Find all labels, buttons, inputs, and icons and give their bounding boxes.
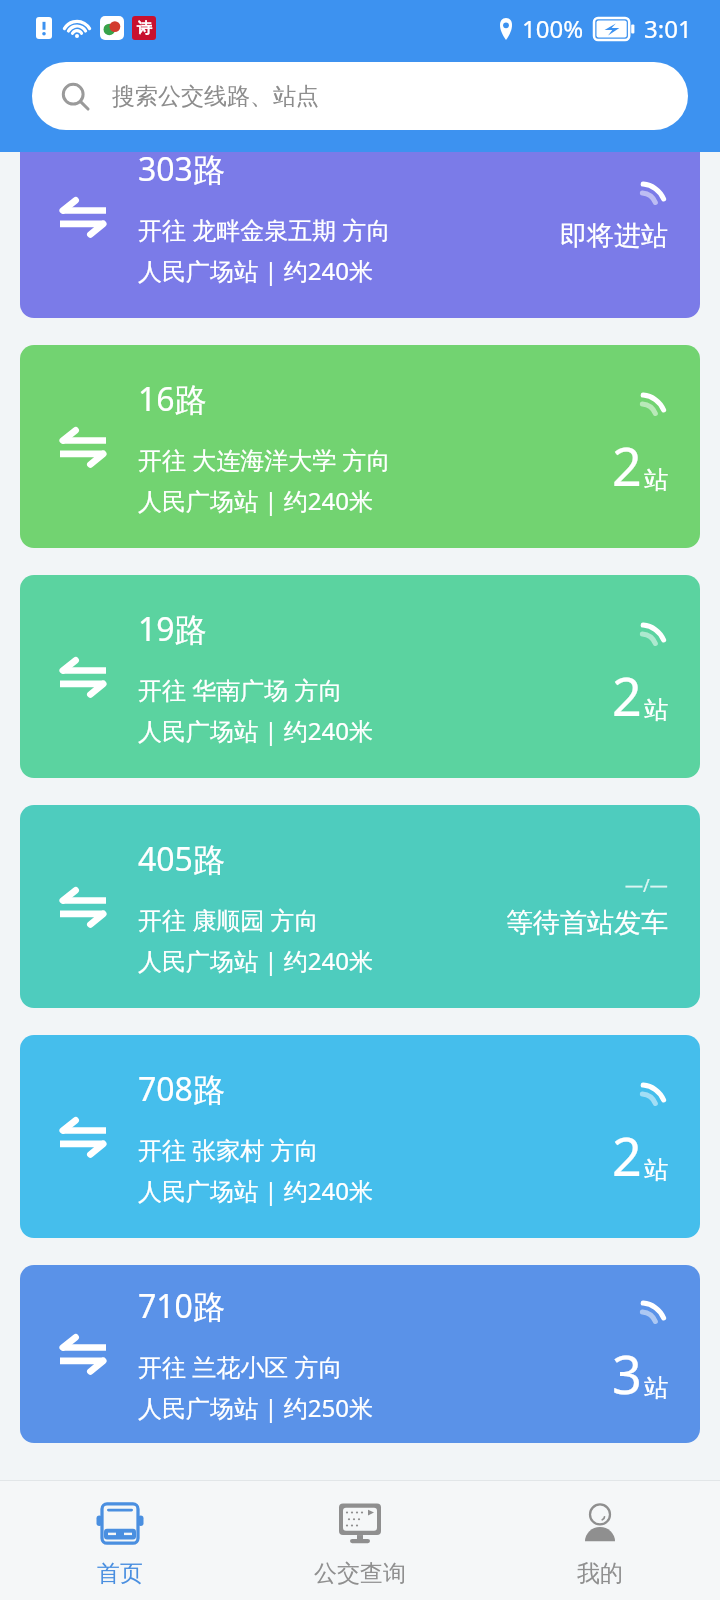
button[interactable]: 710路 <box>20 1265 700 1443</box>
staticText: 开往 张家村 方向 <box>138 1133 319 1166</box>
button[interactable]: 16路 <box>20 345 700 548</box>
staticText: 人民广场站 | 约240米 <box>138 1174 373 1207</box>
staticText: 开往 大连海洋大学 方向 <box>138 443 391 476</box>
button[interactable]: 405路 <box>20 805 700 1008</box>
staticText: 开往 兰花小区 方向 <box>138 1350 343 1383</box>
staticText: 19路 <box>138 607 207 651</box>
staticText: 等待首站发车 <box>506 906 668 940</box>
staticText: 站 <box>644 1155 668 1185</box>
staticText: 站 <box>644 1373 668 1403</box>
other: 首页 <box>95 1501 145 1549</box>
staticText: 开往 龙畔金泉五期 方向 <box>138 213 391 246</box>
staticText: 开往 康顺园 方向 <box>138 903 319 936</box>
staticText: 首页 <box>97 1559 143 1588</box>
staticText: 站 <box>644 465 668 495</box>
staticText: 2 <box>612 1120 642 1191</box>
button[interactable]: 搜索公交线路、站点 <box>32 62 688 130</box>
button[interactable]: 我的 <box>480 1481 720 1600</box>
staticText: 3:01 <box>644 12 692 45</box>
staticText: 人民广场站 | 约250米 <box>138 1391 373 1424</box>
staticText: 诗 <box>137 19 152 38</box>
staticText: 16路 <box>138 377 207 421</box>
other: 公交查询 <box>335 1501 385 1549</box>
staticText: 2 <box>612 430 642 501</box>
staticText: 303路 <box>138 152 225 191</box>
button[interactable]: 首页 <box>0 1481 240 1600</box>
staticText: 人民广场站 | 约240米 <box>138 484 373 517</box>
staticText: 2 <box>612 660 642 731</box>
staticText: 人民广场站 | 约240米 <box>138 254 373 287</box>
other: 我的 <box>575 1501 625 1549</box>
button[interactable]: 19路 <box>20 575 700 778</box>
staticText: 我的 <box>577 1559 623 1588</box>
staticText: 405路 <box>138 837 225 881</box>
staticText: 人民广场站 | 约240米 <box>138 944 373 977</box>
button[interactable]: 公交查询 <box>240 1481 480 1600</box>
button[interactable]: 708路 <box>20 1035 700 1238</box>
staticText: 即将进站 <box>560 219 668 253</box>
staticText: 人民广场站 | 约240米 <box>138 714 373 747</box>
staticText: 708路 <box>138 1067 225 1111</box>
button[interactable]: 303路 <box>20 152 700 318</box>
staticText: 710路 <box>138 1284 225 1328</box>
staticText: —/— <box>625 873 668 898</box>
staticText: 100% <box>522 12 584 45</box>
staticText: 公交查询 <box>314 1559 406 1588</box>
staticText: 开往 华南广场 方向 <box>138 673 343 706</box>
staticText: 3 <box>612 1338 642 1409</box>
staticText: 搜索公交线路、站点 <box>112 82 319 111</box>
staticText: 站 <box>644 695 668 725</box>
